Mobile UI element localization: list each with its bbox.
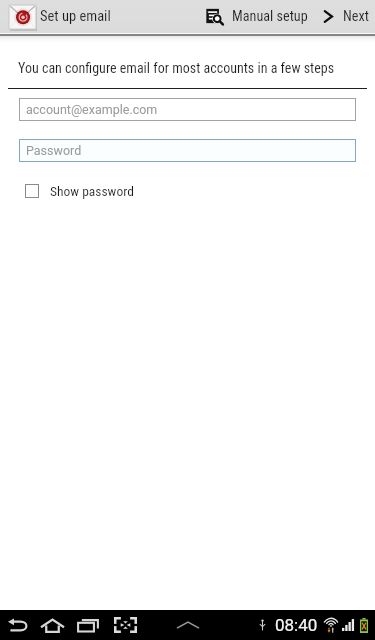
- button[interactable]: Back: [2, 610, 34, 640]
- button[interactable]: Manual setup: [196, 0, 316, 33]
- button[interactable]: Notifications: [172, 610, 203, 640]
- staticText: Manual setup: [232, 8, 308, 25]
- staticText: 08:40: [275, 615, 318, 635]
- button[interactable]: Home: [36, 610, 68, 640]
- staticText: Password: [26, 143, 82, 158]
- button[interactable]: Show password: [0, 179, 142, 203]
- button[interactable]: Screenshot: [109, 610, 141, 640]
- staticText: Set up email: [40, 8, 111, 25]
- staticText: Show password: [50, 183, 134, 199]
- button[interactable]: account@example.com: [19, 98, 356, 121]
- button[interactable]: Password: [19, 139, 356, 162]
- button[interactable]: Next: [316, 0, 375, 33]
- button[interactable]: Set up email: [0, 0, 121, 33]
- staticText: You can configure email for most account…: [18, 60, 335, 76]
- button[interactable]: Recent apps: [72, 610, 104, 640]
- staticText: account@example.com: [26, 102, 158, 117]
- staticText: Next: [343, 8, 369, 25]
